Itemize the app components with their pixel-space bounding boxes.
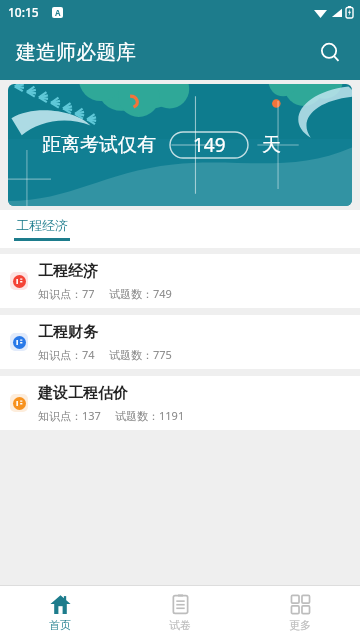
button[interactable]: 工程经济 — [0, 254, 360, 308]
button[interactable]: 建设工程估价 — [0, 376, 360, 430]
staticText: 试题数：1191 — [115, 408, 185, 423]
staticText: 工程财务 — [38, 323, 98, 342]
button[interactable]: 更多 — [240, 586, 360, 640]
staticText: 更多 — [289, 618, 311, 632]
staticText: 首页 — [49, 618, 71, 632]
staticText: 距离考试仅有 — [42, 133, 156, 157]
staticText: 工程经济 — [38, 262, 98, 281]
staticText: A — [55, 7, 61, 18]
button[interactable]: Search — [308, 30, 352, 74]
staticText: 知识点：74 — [38, 347, 95, 362]
staticText: 149 — [193, 132, 226, 158]
staticText: 10:15 — [8, 4, 39, 20]
button[interactable]: 试卷 — [120, 586, 240, 640]
staticText: 知识点：77 — [38, 286, 95, 301]
button[interactable]: 距离考试仅有 — [8, 84, 352, 206]
staticText: 试卷 — [169, 618, 191, 632]
staticText: 试题数：775 — [109, 347, 172, 362]
staticText: 工程经济 — [16, 217, 68, 233]
staticText: 建设工程估价 — [38, 384, 128, 403]
button[interactable]: 工程财务 — [0, 315, 360, 369]
staticText: 建造师必题库 — [16, 40, 136, 65]
staticText: 知识点：137 — [38, 408, 101, 423]
staticText: 天 — [262, 133, 281, 157]
staticText: 试题数：749 — [109, 286, 172, 301]
button[interactable]: 首页 — [0, 586, 120, 640]
button[interactable]: 工程经济 — [14, 210, 70, 248]
